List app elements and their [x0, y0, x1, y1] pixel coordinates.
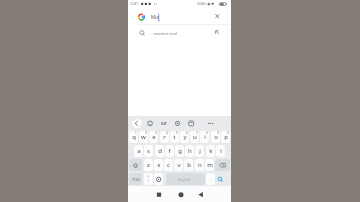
button[interactable]: q [129, 131, 138, 143]
button[interactable]: m [205, 159, 214, 171]
button[interactable]: u [190, 131, 199, 143]
staticText: w [141, 133, 146, 141]
staticText: . [210, 176, 212, 183]
button[interactable]: f [165, 145, 174, 157]
button[interactable]: k [206, 145, 215, 157]
staticText: g [178, 147, 182, 155]
button[interactable]: o [211, 131, 220, 143]
button[interactable]: c [164, 159, 173, 171]
button[interactable]: t [170, 131, 179, 143]
button[interactable] [154, 173, 163, 185]
staticText: v [177, 161, 181, 169]
staticText: c [167, 161, 170, 169]
button[interactable]: . [206, 173, 215, 185]
staticText: z [147, 161, 150, 169]
button[interactable]: z [144, 159, 153, 171]
staticText: 6 [186, 131, 188, 135]
button[interactable]: i [200, 131, 209, 143]
staticText: f [168, 147, 171, 155]
button[interactable] [174, 188, 188, 202]
button[interactable]: y [180, 131, 189, 143]
staticText: English [178, 177, 191, 182]
button[interactable] [128, 26, 231, 39]
staticText: d [158, 147, 162, 155]
button[interactable]: l [216, 145, 225, 157]
staticText: ?123 [132, 177, 140, 182]
button[interactable] [129, 159, 142, 171]
button[interactable]: p [221, 131, 230, 143]
staticText: m [207, 161, 213, 169]
staticText: 8 [206, 131, 208, 135]
staticText: q [132, 133, 136, 141]
staticText: u [193, 133, 197, 141]
button[interactable] [132, 119, 142, 128]
button[interactable]: r [160, 131, 169, 143]
staticText: 5 [176, 131, 178, 135]
staticText: h [188, 147, 192, 155]
button[interactable]: h [185, 145, 194, 157]
staticText: p [224, 133, 228, 141]
button[interactable]: v [174, 159, 183, 171]
button[interactable]: g [175, 145, 184, 157]
button[interactable] [128, 8, 231, 25]
staticText: y [183, 133, 187, 141]
staticText: j [199, 147, 201, 155]
staticText: a [137, 147, 141, 155]
staticText: r [163, 133, 166, 141]
staticText: ...monster mod [151, 31, 177, 36]
button[interactable] [166, 173, 205, 185]
button[interactable]: n [195, 159, 204, 171]
button[interactable]: b [184, 159, 193, 171]
button[interactable]: a [134, 145, 143, 157]
staticText: 1 [135, 131, 137, 135]
staticText: l [220, 147, 222, 155]
staticText: n [198, 161, 202, 169]
staticText: 2 [145, 131, 147, 135]
staticText: k [209, 147, 213, 155]
staticText: 3 [155, 131, 157, 135]
staticText: t [173, 133, 176, 141]
button[interactable]: e [149, 131, 158, 143]
staticText: o [214, 133, 218, 141]
button[interactable]: , [144, 173, 153, 185]
staticText: 9 [217, 131, 219, 135]
staticText: Mia [151, 14, 159, 20]
staticText: i [204, 133, 206, 141]
staticText: 4 [166, 131, 168, 135]
staticText: 10:47 [130, 2, 139, 6]
button[interactable] [194, 188, 208, 202]
staticText: 4.66K/s [197, 2, 207, 6]
staticText: , [148, 176, 150, 183]
staticText: e [152, 133, 156, 141]
staticText: 0 [227, 131, 229, 135]
staticText: GIF [161, 121, 167, 125]
button[interactable]: d [155, 145, 164, 157]
button[interactable] [215, 159, 230, 171]
staticText: b [187, 161, 191, 169]
button[interactable]: x [154, 159, 163, 171]
button[interactable]: s [144, 145, 153, 157]
button[interactable]: w [139, 131, 148, 143]
staticText: x [157, 161, 161, 169]
button[interactable] [152, 188, 166, 202]
button[interactable]: j [195, 145, 204, 157]
button[interactable]: ?123 [129, 173, 142, 185]
staticText: 7 [196, 131, 198, 135]
staticText: s [147, 147, 150, 155]
